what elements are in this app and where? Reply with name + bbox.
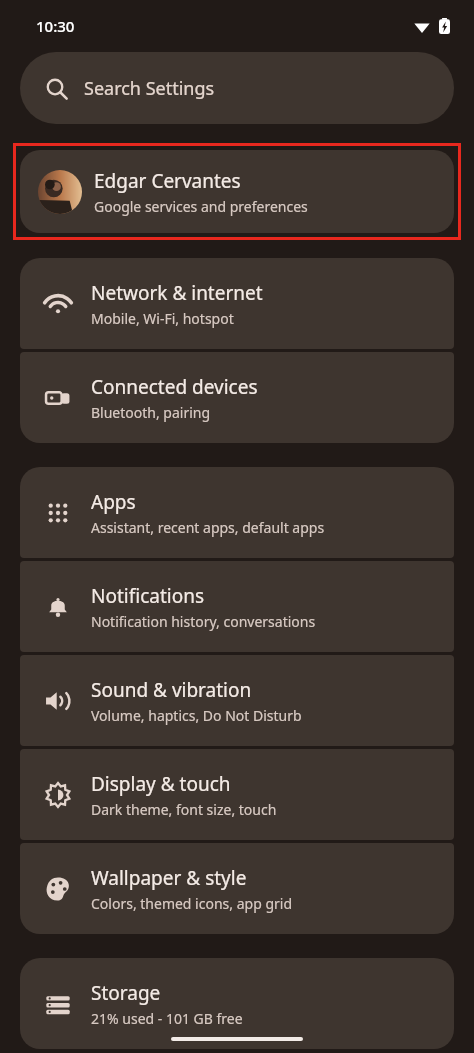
staticText: Wallpaper & style (91, 865, 247, 891)
button[interactable]: Palette (20, 843, 454, 934)
other: Wifi (45, 291, 71, 317)
other: Sound (45, 688, 71, 714)
staticText: Bluetooth, pairing (91, 403, 211, 422)
button[interactable]: Wifi (20, 258, 454, 349)
staticText: Edgar Cervantes (94, 168, 241, 194)
staticText: Network & internet (91, 280, 263, 306)
staticText: 10:30 (36, 16, 75, 36)
staticText: Dark theme, font size, touch (91, 800, 277, 819)
staticText: Sound & vibration (91, 677, 252, 703)
button[interactable]: Apps (20, 467, 454, 558)
other: Display (45, 782, 71, 808)
staticText: Colors, themed icons, app grid (91, 894, 292, 913)
button[interactable]: Edgar Cervantes (20, 150, 454, 233)
button[interactable]: Storage (20, 958, 454, 1049)
button[interactable]: Bell (20, 561, 454, 652)
button[interactable]: Devices (20, 352, 454, 443)
staticText: Display & touch (91, 771, 231, 797)
staticText: Assistant, recent apps, default apps (91, 518, 325, 537)
staticText: 21% used - 101 GB free (91, 1009, 243, 1028)
staticText: Search Settings (84, 76, 215, 101)
staticText: Volume, haptics, Do Not Disturb (91, 706, 302, 725)
staticText: Mobile, Wi-Fi, hotspot (91, 309, 234, 328)
button[interactable]: Display (20, 749, 454, 840)
other: Bell (45, 594, 71, 620)
staticText: Google services and preferences (94, 197, 308, 216)
button[interactable]: Search Settings (20, 52, 454, 124)
staticText: Notification history, conversations (91, 612, 316, 631)
button[interactable]: Sound (20, 655, 454, 746)
staticText: Notifications (91, 583, 205, 609)
other: Storage (45, 991, 71, 1017)
staticText: Storage (91, 980, 161, 1006)
staticText: Apps (91, 489, 136, 515)
other: Palette (45, 876, 71, 902)
staticText: Connected devices (91, 374, 258, 400)
other: Apps (45, 500, 71, 526)
other: Devices (45, 385, 71, 411)
